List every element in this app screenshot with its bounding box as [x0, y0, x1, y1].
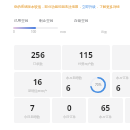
button[interactable]: 16 — [14, 72, 61, 97]
staticText: 今日新增数 — [24, 115, 40, 119]
staticText: 新增注册用户 — [28, 89, 48, 93]
button[interactable]: 256 — [14, 45, 61, 70]
staticText: 本月订单 — [99, 115, 112, 119]
staticText: 总量 — [101, 30, 107, 34]
staticText: 0 — [13, 30, 15, 34]
staticText: 115 — [79, 49, 93, 60]
staticText: 70% — [95, 83, 102, 87]
staticText: 6 — [116, 82, 121, 93]
staticText: 16 — [33, 76, 43, 87]
staticText: 6 — [66, 82, 71, 93]
staticText: 今日订单 — [63, 115, 76, 119]
staticText: 65 — [101, 102, 111, 113]
staticText: 本月新增数 — [66, 76, 82, 80]
button[interactable]: 115 — [62, 45, 110, 70]
staticText: 订单数 — [33, 62, 43, 66]
staticText: 100 — [31, 30, 37, 34]
staticText: 本月订单 — [116, 76, 129, 80]
staticText: 0 — [67, 102, 72, 113]
staticText: 存储空间 — [74, 19, 89, 24]
staticText: 256 — [31, 49, 45, 60]
staticText: 付费用户数 — [78, 62, 94, 66]
button[interactable]: 65 — [88, 98, 123, 123]
button[interactable]: 7 — [14, 98, 50, 123]
button[interactable]: 本月订单 — [112, 72, 130, 97]
button[interactable]: 本月新增数 — [62, 72, 110, 97]
staticText: 您的系统版本较低，部分功能可能无法使用， — [14, 5, 82, 9]
staticText: 已用空间 — [14, 19, 29, 24]
staticText: 7 — [30, 102, 35, 113]
staticText: ，了解更多详情 — [96, 5, 120, 9]
staticText: 已用 — [60, 30, 66, 34]
button[interactable]: 0 — [52, 98, 86, 123]
staticText: 剩余空间 — [39, 19, 54, 24]
button[interactable]: 立即升级 — [82, 5, 96, 9]
